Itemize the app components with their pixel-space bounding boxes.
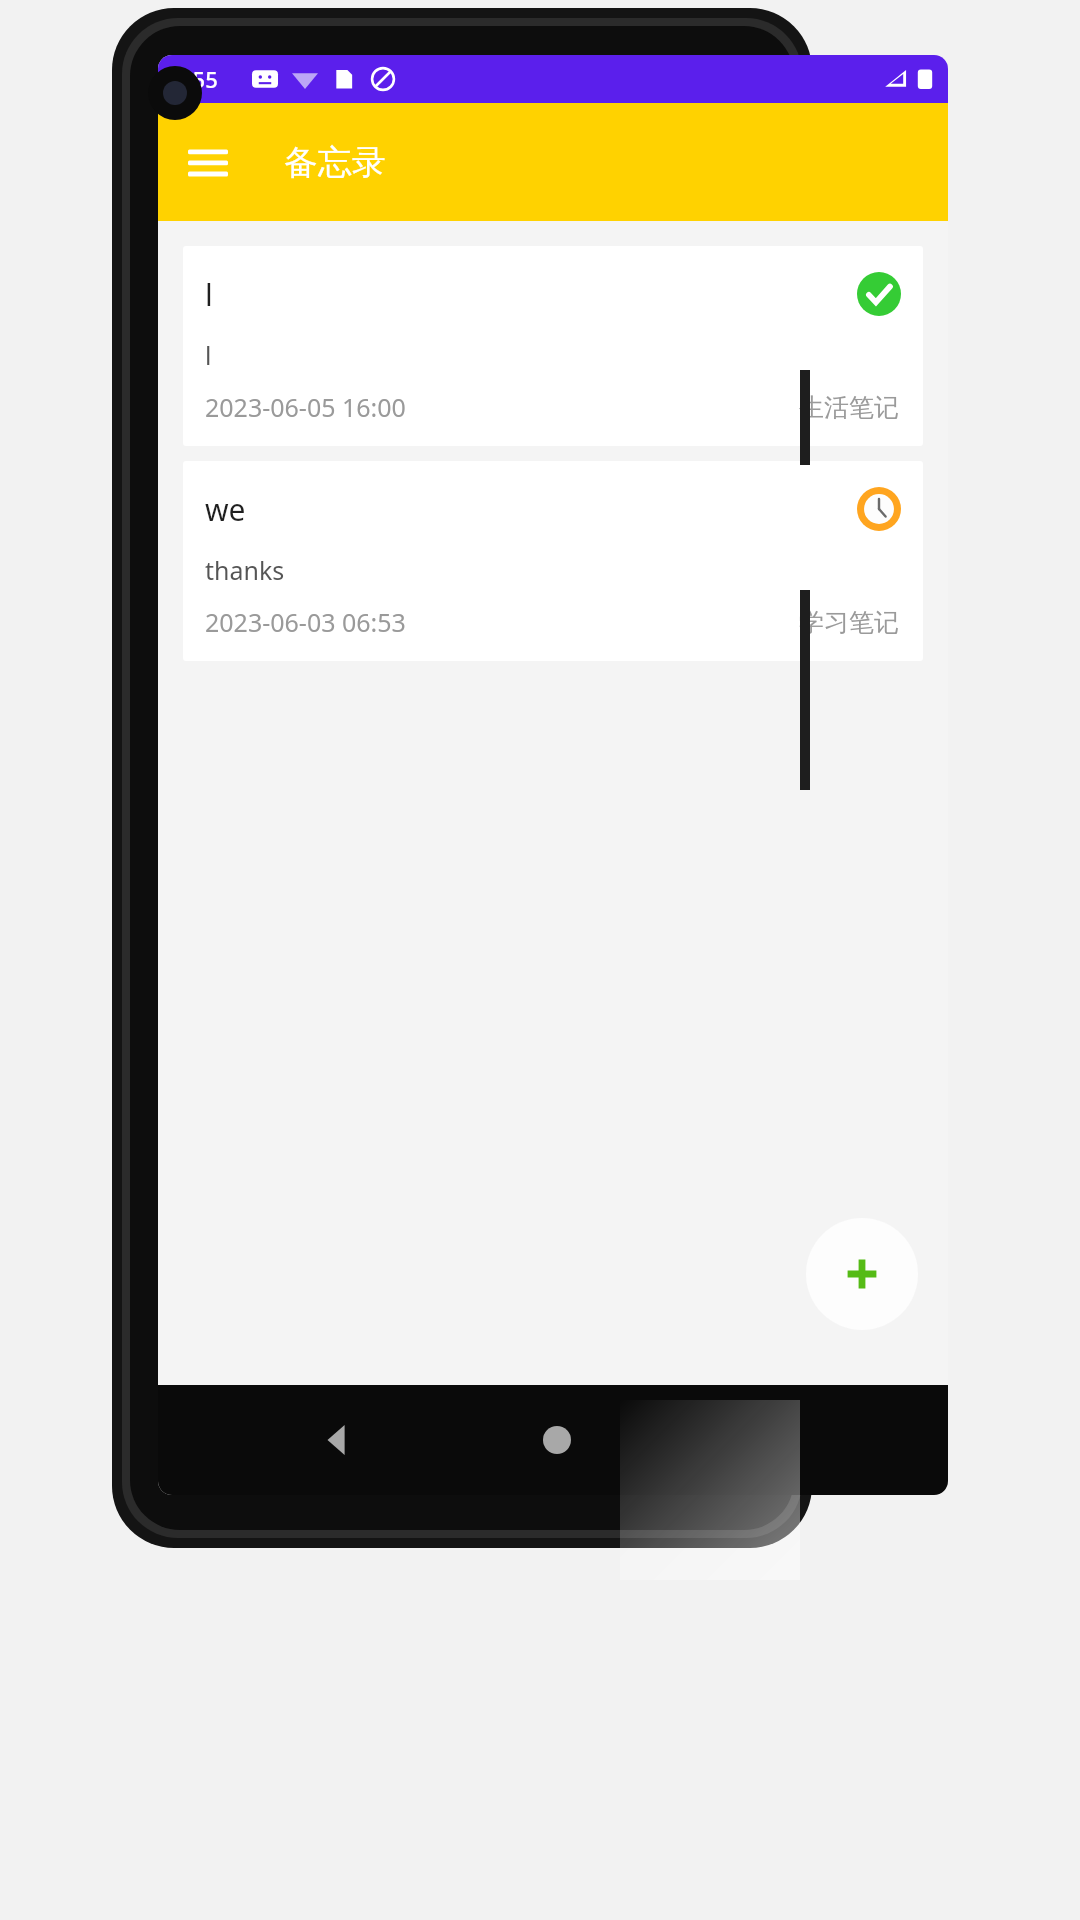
- staticText: 学习笔记: [799, 607, 899, 638]
- staticText: 2023-06-03 06:53: [205, 605, 799, 639]
- other: Completed: [857, 272, 901, 316]
- staticText: 备忘录: [284, 141, 386, 184]
- button[interactable]: Open navigation menu: [178, 132, 238, 192]
- button[interactable]: Home: [517, 1400, 597, 1480]
- button[interactable]: l: [183, 246, 923, 446]
- other: Pending: [857, 487, 901, 531]
- staticText: thanks: [205, 553, 285, 587]
- staticText: 2:55: [174, 64, 218, 94]
- button[interactable]: Add note: [806, 1218, 918, 1330]
- staticText: 生活笔记: [799, 392, 899, 423]
- staticText: we: [205, 489, 857, 530]
- staticText: 2023-06-05 16:00: [205, 390, 799, 424]
- staticText: l: [205, 274, 857, 315]
- staticText: l: [205, 338, 212, 372]
- button[interactable]: Back: [298, 1400, 378, 1480]
- button[interactable]: we: [183, 461, 923, 661]
